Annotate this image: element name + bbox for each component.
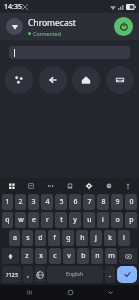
staticText: f: [53, 233, 56, 243]
button[interactable]: .: [105, 266, 115, 283]
staticText: y: [73, 215, 77, 225]
button[interactable]: e: [28, 212, 39, 228]
staticText: i: [102, 215, 104, 225]
button[interactable]: Recents: [18, 285, 40, 300]
staticText: ,: [27, 270, 29, 280]
button[interactable]: ,: [23, 266, 33, 283]
button[interactable]: x: [35, 248, 47, 264]
button[interactable]: [9, 46, 130, 59]
button[interactable]: 4: [41, 194, 53, 210]
button[interactable]: c: [49, 248, 61, 264]
button[interactable]: Shift: [2, 248, 19, 264]
button[interactable]: q: [2, 212, 13, 228]
button[interactable]: m: [105, 248, 117, 264]
staticText: English: [66, 271, 84, 278]
button[interactable]: 5: [55, 194, 67, 210]
button[interactable]: v: [63, 248, 75, 264]
staticText: v: [67, 251, 71, 261]
staticText: 0: [129, 197, 134, 207]
button[interactable]: Apps: [5, 66, 33, 94]
button[interactable]: Keyboard: [106, 66, 134, 94]
staticText: a: [13, 233, 17, 243]
staticText: 8: [101, 197, 106, 207]
staticText: g: [66, 233, 71, 243]
button[interactable]: w: [15, 212, 26, 228]
staticText: j: [95, 233, 97, 243]
button[interactable]: l: [118, 230, 130, 246]
staticText: h: [80, 233, 85, 243]
button[interactable]: h: [76, 230, 88, 246]
button[interactable]: y: [69, 212, 81, 228]
staticText: k: [108, 233, 112, 243]
button[interactable]: 7: [83, 194, 95, 210]
button[interactable]: k: [104, 230, 116, 246]
staticText: x: [39, 251, 43, 261]
button[interactable]: GIF: [44, 179, 57, 192]
staticText: Connected: [33, 30, 61, 37]
staticText: 14:35: [4, 2, 22, 12]
staticText: d: [38, 233, 43, 243]
button[interactable]: 0: [125, 194, 137, 210]
button[interactable]: Voice input: [121, 179, 134, 192]
button[interactable]: f: [48, 230, 60, 246]
button[interactable]: s: [22, 230, 33, 246]
staticText: s: [26, 233, 30, 243]
button[interactable]: a: [9, 230, 20, 246]
button[interactable]: p: [125, 212, 137, 228]
staticText: .: [109, 270, 111, 280]
button[interactable]: Back: [99, 285, 121, 300]
button[interactable]: 9: [111, 194, 123, 210]
staticText: 9: [115, 197, 120, 207]
button[interactable]: 3: [28, 194, 39, 210]
button[interactable]: ?123: [2, 266, 21, 283]
button[interactable]: Power: [114, 17, 133, 36]
button[interactable]: u: [83, 212, 95, 228]
button[interactable]: 6: [69, 194, 81, 210]
button[interactable]: n: [91, 248, 103, 264]
staticText: c: [53, 251, 57, 261]
button[interactable]: Sticker: [63, 179, 76, 192]
staticText: m: [108, 251, 115, 261]
button[interactable]: i: [97, 212, 109, 228]
button[interactable]: Settings: [82, 179, 95, 192]
button[interactable]: Home: [59, 285, 81, 300]
staticText: o: [115, 215, 120, 225]
staticText: b: [81, 251, 86, 261]
button[interactable]: z: [21, 248, 33, 264]
button[interactable]: 1: [2, 194, 13, 210]
staticText: w: [18, 215, 24, 225]
button[interactable]: English: [47, 266, 103, 283]
staticText: e: [32, 215, 36, 225]
staticText: q: [5, 215, 10, 225]
button[interactable]: t: [55, 212, 67, 228]
button[interactable]: Emoji: [102, 179, 115, 192]
button[interactable]: 8: [97, 194, 109, 210]
staticText: 5: [59, 197, 64, 207]
staticText: 1: [5, 197, 10, 207]
button[interactable]: Backspace: [119, 248, 137, 264]
button[interactable]: Change language: [35, 266, 45, 283]
button[interactable]: 2: [15, 194, 26, 210]
staticText: Chromecast: [28, 17, 76, 29]
button[interactable]: d: [35, 230, 46, 246]
staticText: u: [87, 215, 92, 225]
button[interactable]: j: [90, 230, 102, 246]
button[interactable]: Back: [39, 66, 67, 94]
staticText: 4: [45, 197, 50, 207]
button[interactable]: Home: [72, 66, 100, 94]
button[interactable]: g: [62, 230, 74, 246]
button[interactable]: b: [77, 248, 89, 264]
staticText: l: [123, 233, 125, 243]
button[interactable]: Apps: [5, 179, 18, 192]
button[interactable]: Enter: [117, 266, 137, 283]
staticText: 7: [87, 197, 92, 207]
staticText: ?123: [6, 271, 18, 278]
button[interactable]: o: [111, 212, 123, 228]
staticText: 2: [18, 197, 23, 207]
button[interactable]: Clipboard: [24, 179, 37, 192]
staticText: z: [25, 251, 29, 261]
staticText: t: [60, 215, 63, 225]
button[interactable]: r: [41, 212, 53, 228]
staticText: 3: [31, 197, 36, 207]
staticText: r: [46, 215, 49, 225]
